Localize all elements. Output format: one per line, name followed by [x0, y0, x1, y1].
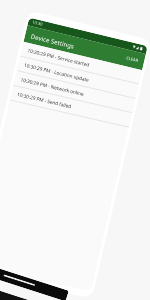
staticText: CLEAR	[126, 55, 139, 64]
staticText: 10:30:29 PM - Service started	[27, 47, 90, 68]
staticText: 10:30:29 PM - Network online	[20, 76, 85, 98]
staticText: Device Settings	[30, 31, 76, 50]
staticText: 10:30:29 PM - Send failed	[16, 91, 72, 110]
button[interactable]: 10:30:29 PM - Location update	[17, 56, 139, 98]
button[interactable]: 10:30:29 PM - Network online	[13, 71, 135, 112]
button[interactable]: 10:30:29 PM - Send failed	[10, 86, 132, 127]
button[interactable]: CLEAR	[122, 53, 142, 67]
button[interactable]: 10:30:29 PM - Service started	[20, 42, 142, 83]
staticText: 10:30	[31, 19, 43, 28]
staticText: 10:30:29 PM - Location update	[23, 62, 90, 84]
